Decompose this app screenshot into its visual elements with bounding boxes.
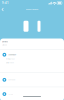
button[interactable]: Soundbar: [0, 49, 64, 72]
staticText: 9:41: [2, 1, 9, 5]
staticText: Earbuds: [8, 79, 15, 81]
staticText: Soundbar: [8, 54, 16, 56]
button[interactable]: Back: [0, 6, 5, 13]
staticText: Devices: [2, 41, 8, 42]
staticText: Firmware 2.4: [6, 58, 15, 60]
staticText: Connect devices: [25, 9, 38, 10]
staticText: Battery 86%: [6, 62, 14, 63]
button[interactable]: Remote: [0, 87, 64, 100]
staticText: 2 linked: [2, 44, 7, 46]
staticText: Remote: [8, 93, 13, 95]
button[interactable]: Earbuds: [0, 73, 64, 87]
